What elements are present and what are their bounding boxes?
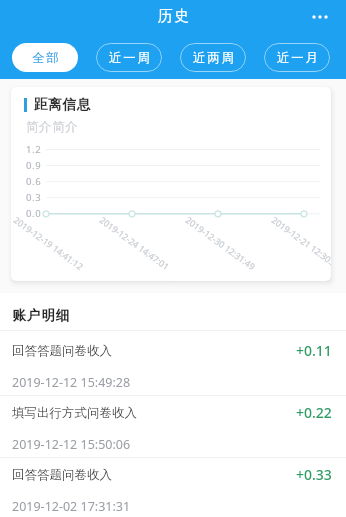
staticText: +0.33 [296, 465, 332, 484]
staticText: 近一月 [277, 50, 320, 66]
button[interactable]: More options [306, 3, 333, 30]
staticText: 回答答题问卷收入 [12, 467, 112, 483]
button[interactable]: 回答答题问卷收入 [0, 331, 346, 393]
staticText: 2019-12-02 17:31:31 [12, 498, 131, 515]
button[interactable]: 填写出行方式问卷收入 [0, 393, 346, 455]
staticText: 2019-12-12 15:49:28 [12, 374, 131, 391]
staticText: 账户明细 [12, 307, 70, 324]
staticText: 填写出行方式问卷收入 [12, 405, 137, 421]
button[interactable]: 回答答题问卷收入 [0, 455, 346, 517]
button[interactable]: 近两周 [180, 43, 246, 72]
staticText: +0.22 [296, 403, 332, 422]
staticText: 历史 [157, 7, 190, 26]
button[interactable]: 全部 [12, 43, 78, 72]
staticText: 全部 [32, 50, 61, 66]
button[interactable]: 近一周 [96, 43, 162, 72]
staticText: 近一周 [109, 50, 152, 66]
staticText: 距离信息 [34, 96, 92, 113]
staticText: 2019-12-12 15:50:06 [12, 436, 131, 453]
staticText: 近两周 [193, 50, 236, 66]
staticText: +0.11 [296, 341, 332, 360]
staticText: 回答答题问卷收入 [12, 343, 112, 359]
button[interactable]: 近一月 [264, 43, 330, 72]
staticText: 简介简介 [26, 119, 79, 135]
